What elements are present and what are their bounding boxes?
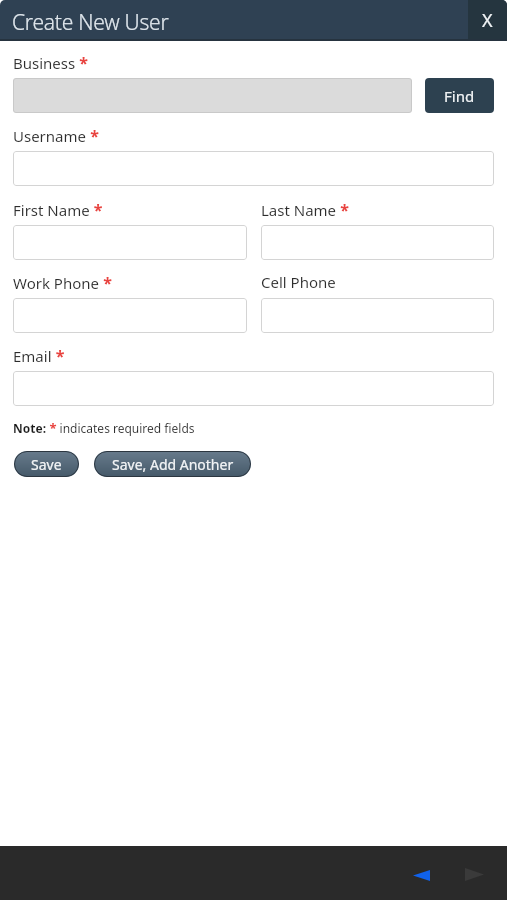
staticText: Cell Phone xyxy=(261,272,336,292)
button[interactable]: Save xyxy=(14,451,79,477)
button[interactable] xyxy=(13,151,494,186)
button[interactable]: Find xyxy=(425,78,494,113)
staticText: Work Phone * xyxy=(13,272,112,294)
button[interactable] xyxy=(13,78,412,113)
button[interactable]: Forward xyxy=(450,847,498,900)
staticText: Save, Add Another xyxy=(112,455,234,474)
button[interactable]: Back xyxy=(397,848,445,900)
staticText: Save xyxy=(31,455,62,474)
staticText: X xyxy=(482,8,493,33)
staticText: Create New User xyxy=(12,8,169,37)
staticText: Username * xyxy=(13,125,99,147)
button[interactable]: Save, Add Another xyxy=(94,451,251,477)
button[interactable] xyxy=(13,371,494,406)
button[interactable] xyxy=(13,225,247,260)
staticText: Business * xyxy=(13,52,89,74)
staticText: First Name * xyxy=(13,199,103,221)
button[interactable] xyxy=(261,225,494,260)
button[interactable]: Close xyxy=(468,0,507,41)
button[interactable] xyxy=(13,298,247,333)
button[interactable] xyxy=(261,298,494,333)
staticText: Note: * indicates required fields xyxy=(13,419,195,437)
staticText: Email * xyxy=(13,345,65,367)
staticText: Find xyxy=(444,86,475,106)
staticText: Last Name * xyxy=(261,199,349,221)
